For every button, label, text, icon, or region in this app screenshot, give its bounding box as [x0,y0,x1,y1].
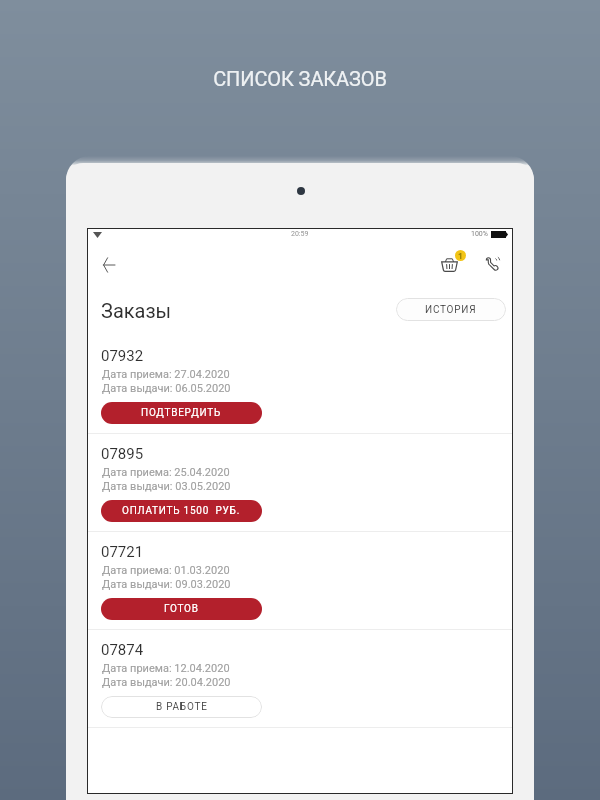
staticText: ПОДТВЕРДИТЬ [141,407,222,419]
staticText: 07721 [101,543,144,561]
staticText: Дата выдачи: 06.05.2020 [102,382,231,395]
button[interactable]: ИСТОРИЯ [396,298,506,321]
staticText: Дата выдачи: 09.03.2020 [102,578,231,591]
staticText: Дата выдачи: 20.04.2020 [102,676,231,689]
staticText: СПИСОК ЗАКАЗОВ [0,67,600,90]
button[interactable]: ПОДТВЕРДИТЬ [101,402,262,424]
staticText: ИСТОРИЯ [425,304,477,316]
staticText: Дата приема: 12.04.2020 [102,662,230,675]
staticText: ГОТОВ [164,603,199,615]
button[interactable]: Basket [424,242,460,282]
staticText: Дата приема: 25.04.2020 [102,466,230,479]
button[interactable]: 07721 [87,544,513,630]
staticText: 07895 [101,445,144,463]
staticText: 07874 [101,641,144,659]
button[interactable]: В РАБОТЕ [101,696,262,718]
staticText: 20:59 [291,230,309,238]
staticText: Дата приема: 27.04.2020 [102,368,230,381]
button[interactable]: 07932 [87,348,513,434]
staticText: 100% [471,230,488,238]
staticText: В РАБОТЕ [156,701,208,713]
staticText: ОПЛАТИТЬ 1500 РУБ. [122,505,241,517]
button[interactable]: Back [91,247,126,282]
button[interactable]: ОПЛАТИТЬ 1500 РУБ. [101,500,262,522]
button[interactable]: 07895 [87,446,513,532]
staticText: 07932 [101,347,144,365]
staticText: Заказы [101,299,172,322]
button[interactable]: 07874 [87,642,513,728]
button[interactable]: ГОТОВ [101,598,262,620]
staticText: Дата приема: 01.03.2020 [102,564,230,577]
staticText: Дата выдачи: 03.05.2020 [102,480,231,493]
button[interactable]: Call [467,240,503,280]
staticText: 1 [458,250,463,261]
